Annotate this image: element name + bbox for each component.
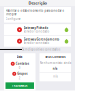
staticText: Gateway Gerenciamento [23, 38, 59, 41]
staticText: TRANSFERIR [12, 84, 28, 87]
staticText: 0 [19, 66, 21, 70]
button[interactable]: Gateway Pichado [4, 24, 71, 35]
staticText: Seus Contatos [45, 55, 65, 59]
staticText: Lista [17, 55, 23, 59]
button[interactable]: Gateway Gerenciamento [4, 36, 71, 47]
staticText: Descrição [28, 0, 46, 6]
staticText: Servidor conectado [23, 41, 49, 45]
staticText: Gateway Pichado [23, 26, 48, 30]
staticText: n/a [53, 75, 57, 78]
staticText: Configurar [5, 17, 20, 21]
staticText: Sem dispositivos conectados [22, 48, 60, 51]
staticText: Servidor conectado [23, 30, 49, 33]
staticText: n/a [53, 67, 58, 70]
staticText: 2 [19, 76, 21, 80]
staticText: Contatos [16, 62, 29, 65]
staticText: Nenhum contato ainda [40, 61, 71, 65]
staticText: Habilitar o estabelecimento para conecta… [5, 9, 64, 16]
button[interactable]: TRANSFERIR [5, 82, 34, 89]
staticText: Grupos [17, 72, 27, 75]
